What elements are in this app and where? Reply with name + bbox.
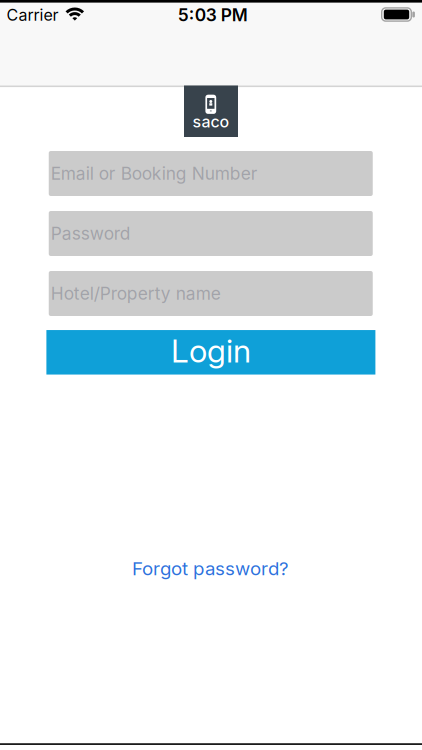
staticText: saco	[192, 112, 229, 131]
staticText: Carrier	[6, 6, 58, 24]
staticText: Email or Booking Number	[51, 163, 258, 184]
staticText: Password	[51, 223, 131, 244]
button[interactable]: Hotel/Property name	[49, 271, 373, 316]
staticText: Hotel/Property name	[51, 283, 221, 304]
staticText: 5:03 PM	[178, 5, 248, 25]
staticText: Login	[171, 332, 251, 370]
button[interactable]: Login	[46, 330, 375, 375]
staticText: Forgot password?	[132, 557, 289, 579]
button[interactable]: Forgot password?	[132, 557, 289, 579]
button[interactable]: Password	[49, 211, 373, 256]
button[interactable]: Email or Booking Number	[49, 151, 373, 196]
